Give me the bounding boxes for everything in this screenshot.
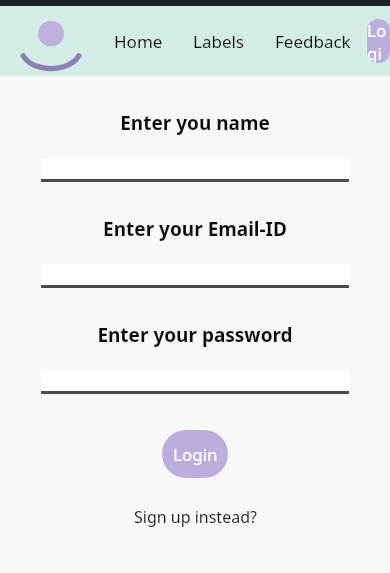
button[interactable] — [41, 370, 349, 394]
staticText: Home — [114, 30, 163, 53]
button[interactable]: Home — [112, 22, 165, 61]
staticText: Login — [173, 443, 218, 466]
button[interactable]: Login — [367, 19, 390, 63]
staticText: Feedback — [275, 30, 351, 53]
button[interactable]: Logo, home — [14, 18, 88, 64]
staticText: Enter you name — [120, 110, 270, 136]
staticText: Enter your password — [97, 322, 293, 348]
button[interactable]: Sign up instead? — [126, 502, 265, 532]
button[interactable]: Feedback — [273, 22, 353, 61]
staticText: Enter your Email-ID — [103, 216, 287, 242]
staticText: Sign up instead? — [134, 506, 257, 528]
staticText: Labels — [193, 30, 245, 53]
staticText: Login — [367, 19, 390, 63]
button[interactable]: Labels — [191, 22, 247, 61]
button[interactable]: Login — [162, 430, 228, 478]
button[interactable] — [41, 158, 349, 182]
button[interactable] — [41, 264, 349, 288]
